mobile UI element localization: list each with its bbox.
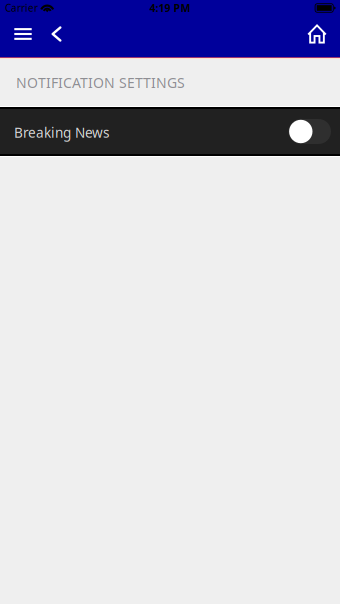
button[interactable]: Menu	[5, 16, 41, 52]
button[interactable]: Back	[41, 16, 72, 52]
staticText: Breaking News	[14, 123, 110, 142]
button[interactable]: Home	[297, 16, 337, 52]
button[interactable]: Breaking News	[0, 109, 340, 154]
staticText: Carrier	[5, 1, 38, 15]
staticText: 4:19 PM	[149, 1, 190, 15]
staticText: NOTIFICATION SETTINGS	[16, 73, 185, 92]
